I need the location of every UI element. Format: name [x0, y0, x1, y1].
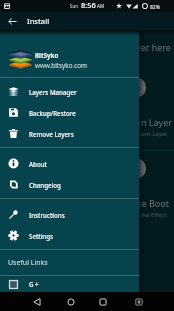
button[interactable]: Changelog [0, 174, 139, 195]
button[interactable]: Recent apps [94, 292, 112, 311]
button[interactable]: Backup/Restore [0, 102, 139, 123]
staticText: 82% [150, 4, 160, 11]
staticText: Changelog [29, 181, 61, 189]
button[interactable]: Back [4, 13, 20, 29]
button[interactable]: Switch keyboard [130, 292, 148, 311]
staticText: Tap a layer here [104, 41, 171, 53]
staticText: Backup/Restore [29, 109, 76, 117]
button[interactable]: Instructions [0, 204, 139, 225]
staticText: Smoke Boot [118, 197, 170, 209]
staticText: G + [29, 280, 39, 288]
staticText: Settings [29, 232, 54, 240]
staticText: BitSyko [35, 51, 59, 59]
staticText: Screen Layer [118, 116, 173, 128]
staticText: AM [97, 3, 105, 9]
staticText: www.bitsyko.com [35, 61, 87, 70]
button[interactable]: Layers Manager [0, 81, 139, 102]
button[interactable]: About [0, 153, 139, 174]
staticText: Sun [70, 3, 79, 9]
staticText: About [29, 160, 47, 168]
button[interactable]: Settings [0, 225, 139, 246]
button[interactable]: G + [0, 276, 139, 292]
button[interactable]: Back [28, 292, 46, 311]
staticText: Use Smoke Effect [118, 211, 167, 219]
staticText: Useful Links [8, 258, 48, 268]
staticText: Layers Manager [29, 88, 77, 96]
staticText: Use System Layer [118, 130, 168, 138]
staticText: Install [27, 16, 50, 26]
button[interactable]: Home [62, 292, 80, 311]
staticText: Instructions [29, 211, 65, 219]
button[interactable]: Remove Layers [0, 123, 139, 144]
staticText: Remove Layers [29, 130, 74, 138]
staticText: 8:56 [81, 0, 96, 10]
